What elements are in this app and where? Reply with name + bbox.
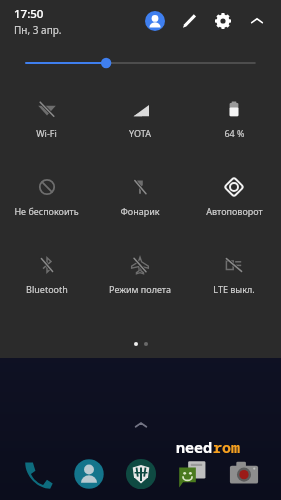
staticText: LTE выкл. <box>213 283 255 295</box>
staticText: Не беспокоить <box>14 205 79 217</box>
staticText: YOTA <box>129 127 151 139</box>
button[interactable]: User account <box>141 7 169 35</box>
staticText: Bluetooth <box>26 283 68 295</box>
button[interactable]: Phone <box>16 452 60 496</box>
staticText: Фонарик <box>120 205 160 217</box>
button[interactable]: Режим полета <box>93 250 187 306</box>
staticText: Режим полета <box>109 283 171 295</box>
button[interactable]: Фонарик <box>93 172 187 228</box>
staticText: 17:50 <box>14 6 44 22</box>
button[interactable]: Автоповорот <box>187 172 281 228</box>
button[interactable]: YOTA <box>93 94 187 150</box>
staticText: rom <box>213 437 241 457</box>
button[interactable]: Wi-Fi <box>0 94 93 150</box>
staticText: need <box>176 437 213 457</box>
button[interactable]: Magisk <box>119 452 163 496</box>
button[interactable]: Settings <box>209 7 237 35</box>
button[interactable]: Brightness <box>0 42 281 84</box>
button[interactable]: Не беспокоить <box>0 172 93 228</box>
button[interactable]: 64 % <box>187 94 281 150</box>
button[interactable]: Collapse <box>243 7 271 35</box>
button[interactable]: Bluetooth <box>0 250 93 306</box>
button[interactable]: Messages <box>170 452 214 496</box>
staticText: Пн, 3 апр. <box>14 23 62 37</box>
button[interactable]: Edit tiles <box>175 7 203 35</box>
button[interactable]: Contacts <box>67 452 111 496</box>
button[interactable]: LTE выкл. <box>187 250 281 306</box>
staticText: Автоповорот <box>206 205 263 217</box>
staticText: Wi-Fi <box>36 127 57 139</box>
staticText: 64 % <box>224 127 245 139</box>
button[interactable]: Camera <box>222 452 266 496</box>
